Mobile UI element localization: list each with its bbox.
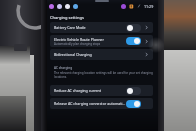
staticText: Electric Vehicle Route Planner [54,37,104,42]
other: Open [144,39,149,44]
button[interactable]: Quick setting 1 [49,4,54,9]
staticText: Charging settings [50,15,84,20]
staticText: The relevant charging location settings … [54,71,153,79]
button[interactable] [126,87,141,95]
button[interactable] [126,100,141,108]
staticText: 11:29 [144,4,154,9]
staticText: Automatically plan charging stops [54,42,101,46]
button[interactable]: Quick setting 4 [73,4,78,9]
staticText: Release AC charging connector automatica… [54,101,126,106]
button[interactable] [126,37,141,45]
button[interactable]: Quick setting 2 [57,4,62,9]
button[interactable]: Quick setting 3 [65,4,70,9]
button[interactable]: Bidirectional Charging [50,49,153,60]
staticText: Bidirectional Charging [54,52,92,57]
staticText: AC charging [54,66,73,70]
button[interactable]: Release AC charging connector automatica… [50,98,153,109]
button[interactable]: Settings [137,4,141,8]
button[interactable]: Battery Care Mode [50,22,153,33]
staticText: Battery Care Mode [54,25,86,30]
staticText: Reduce AC charging current [54,88,102,93]
button[interactable]: Reduce AC charging current [50,85,153,96]
button[interactable]: Electric Vehicle Route Planner [50,35,153,47]
button[interactable] [126,24,141,32]
button[interactable]: Charging status [129,4,134,9]
other: Open [144,52,149,57]
other: Open [144,25,149,30]
button[interactable]: Profile [121,4,126,9]
